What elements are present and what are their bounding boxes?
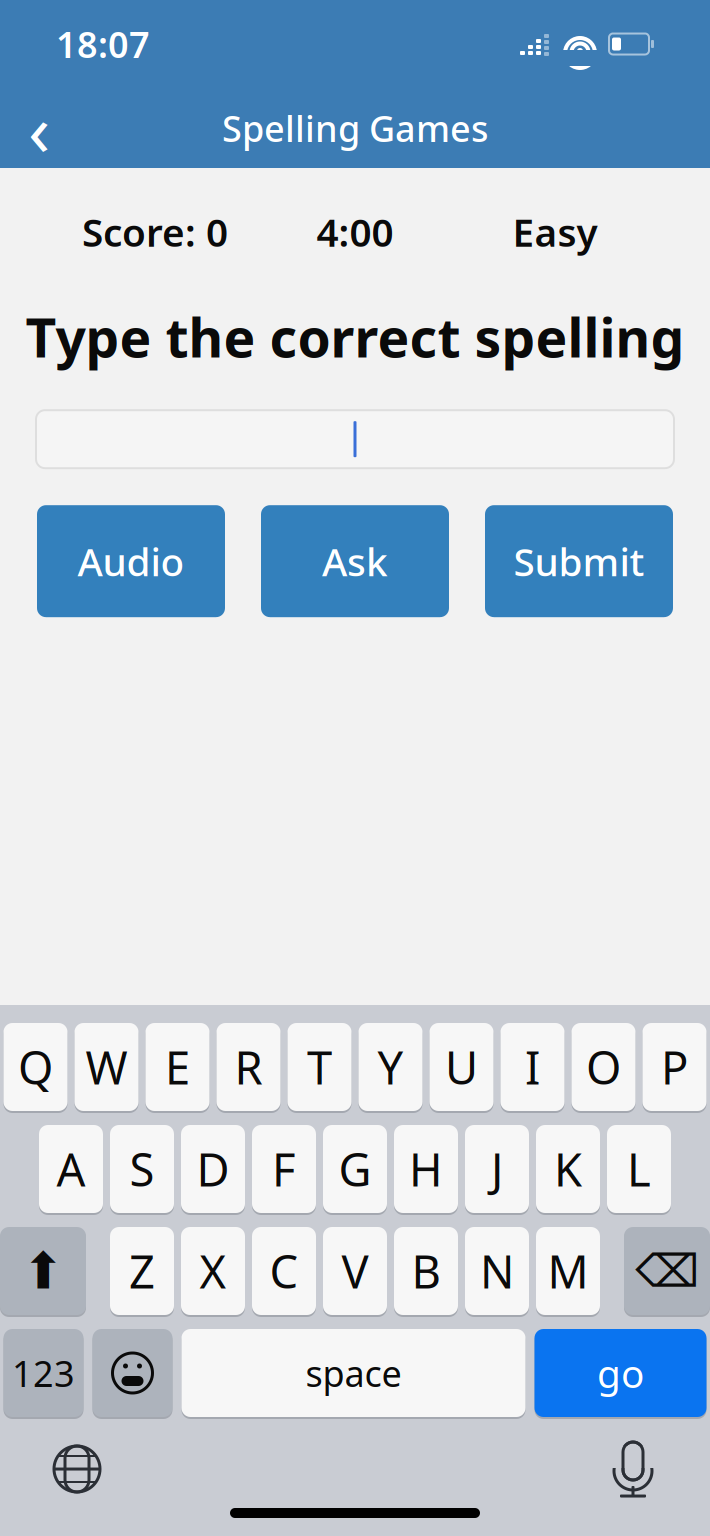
staticText: ‹ bbox=[28, 80, 50, 176]
button[interactable]: Y bbox=[358, 1021, 422, 1113]
staticText: U bbox=[445, 1037, 478, 1097]
button[interactable]: Back bbox=[8, 97, 70, 159]
button[interactable]: 123 bbox=[3, 1327, 83, 1419]
staticText: ⌫ bbox=[635, 1245, 699, 1297]
button[interactable]: D bbox=[181, 1123, 245, 1215]
staticText: J bbox=[491, 1139, 503, 1199]
staticText: Z bbox=[129, 1241, 155, 1301]
button[interactable]: P bbox=[642, 1021, 706, 1113]
button[interactable]: K bbox=[536, 1123, 600, 1215]
staticText: Spelling Games bbox=[222, 104, 488, 152]
button[interactable]: N bbox=[465, 1225, 529, 1317]
button[interactable]: Dictation bbox=[608, 1439, 658, 1499]
button[interactable]: G bbox=[323, 1123, 387, 1215]
button[interactable]: T bbox=[287, 1021, 351, 1113]
staticText: Q bbox=[18, 1037, 53, 1097]
staticText: 18:07 bbox=[56, 20, 150, 68]
staticText: A bbox=[56, 1139, 85, 1199]
staticText: K bbox=[554, 1139, 582, 1199]
button[interactable]: F bbox=[252, 1123, 316, 1215]
button[interactable]: Submit bbox=[485, 505, 673, 617]
staticText: B bbox=[411, 1241, 440, 1301]
button[interactable]: H bbox=[394, 1123, 458, 1215]
staticText: I bbox=[525, 1037, 540, 1097]
button[interactable]: B bbox=[394, 1225, 458, 1317]
button[interactable]: Emoji bbox=[92, 1327, 172, 1419]
staticText: Y bbox=[377, 1037, 403, 1097]
staticText: Type the correct spelling bbox=[25, 301, 684, 372]
staticText: V bbox=[341, 1241, 368, 1301]
staticText: M bbox=[547, 1241, 588, 1301]
staticText: T bbox=[307, 1037, 332, 1097]
staticText: G bbox=[338, 1139, 371, 1199]
button[interactable]: R bbox=[216, 1021, 280, 1113]
button[interactable]: J bbox=[465, 1123, 529, 1215]
button[interactable]: Z bbox=[110, 1225, 174, 1317]
staticText: E bbox=[165, 1037, 190, 1097]
button[interactable]: W bbox=[74, 1021, 138, 1113]
button[interactable]: U bbox=[429, 1021, 493, 1113]
staticText: go bbox=[597, 1347, 644, 1399]
button[interactable]: C bbox=[252, 1225, 316, 1317]
staticText: O bbox=[586, 1037, 621, 1097]
staticText: W bbox=[85, 1037, 127, 1097]
staticText: R bbox=[234, 1037, 262, 1097]
button[interactable]: S bbox=[110, 1123, 174, 1215]
staticText: L bbox=[627, 1139, 651, 1199]
staticText: Submit bbox=[513, 535, 644, 587]
button[interactable]: Audio bbox=[37, 505, 225, 617]
button[interactable]: X bbox=[181, 1225, 245, 1317]
staticText: Easy bbox=[512, 206, 597, 257]
button[interactable]: Change keyboard bbox=[52, 1444, 102, 1494]
staticText: 123 bbox=[12, 1349, 75, 1397]
staticText: N bbox=[480, 1241, 514, 1301]
button[interactable]: Ask bbox=[261, 505, 449, 617]
button[interactable]: Shift bbox=[0, 1225, 86, 1317]
button[interactable]: I bbox=[500, 1021, 564, 1113]
button[interactable]: L bbox=[607, 1123, 671, 1215]
button[interactable]: Delete bbox=[624, 1225, 710, 1317]
button[interactable]: E bbox=[145, 1021, 209, 1113]
button[interactable]: V bbox=[323, 1225, 387, 1317]
button[interactable]: go bbox=[534, 1327, 706, 1419]
button[interactable]: O bbox=[571, 1021, 635, 1113]
staticText: Audio bbox=[77, 535, 184, 587]
staticText: 4:00 bbox=[316, 206, 393, 257]
button[interactable]: M bbox=[536, 1225, 600, 1317]
staticText: Score: 0 bbox=[82, 206, 228, 257]
staticText: S bbox=[129, 1139, 154, 1199]
staticText: Ask bbox=[322, 535, 388, 587]
staticText: P bbox=[661, 1037, 688, 1097]
staticText: D bbox=[196, 1139, 229, 1199]
staticText: X bbox=[199, 1241, 226, 1301]
staticText: F bbox=[272, 1139, 296, 1199]
staticText: space bbox=[305, 1349, 401, 1397]
staticText: H bbox=[409, 1139, 443, 1199]
button[interactable]: A bbox=[39, 1123, 103, 1215]
staticText: ⬆ bbox=[22, 1242, 64, 1300]
staticText: C bbox=[269, 1241, 298, 1301]
button[interactable]: space bbox=[181, 1327, 525, 1419]
button[interactable]: Q bbox=[3, 1021, 67, 1113]
